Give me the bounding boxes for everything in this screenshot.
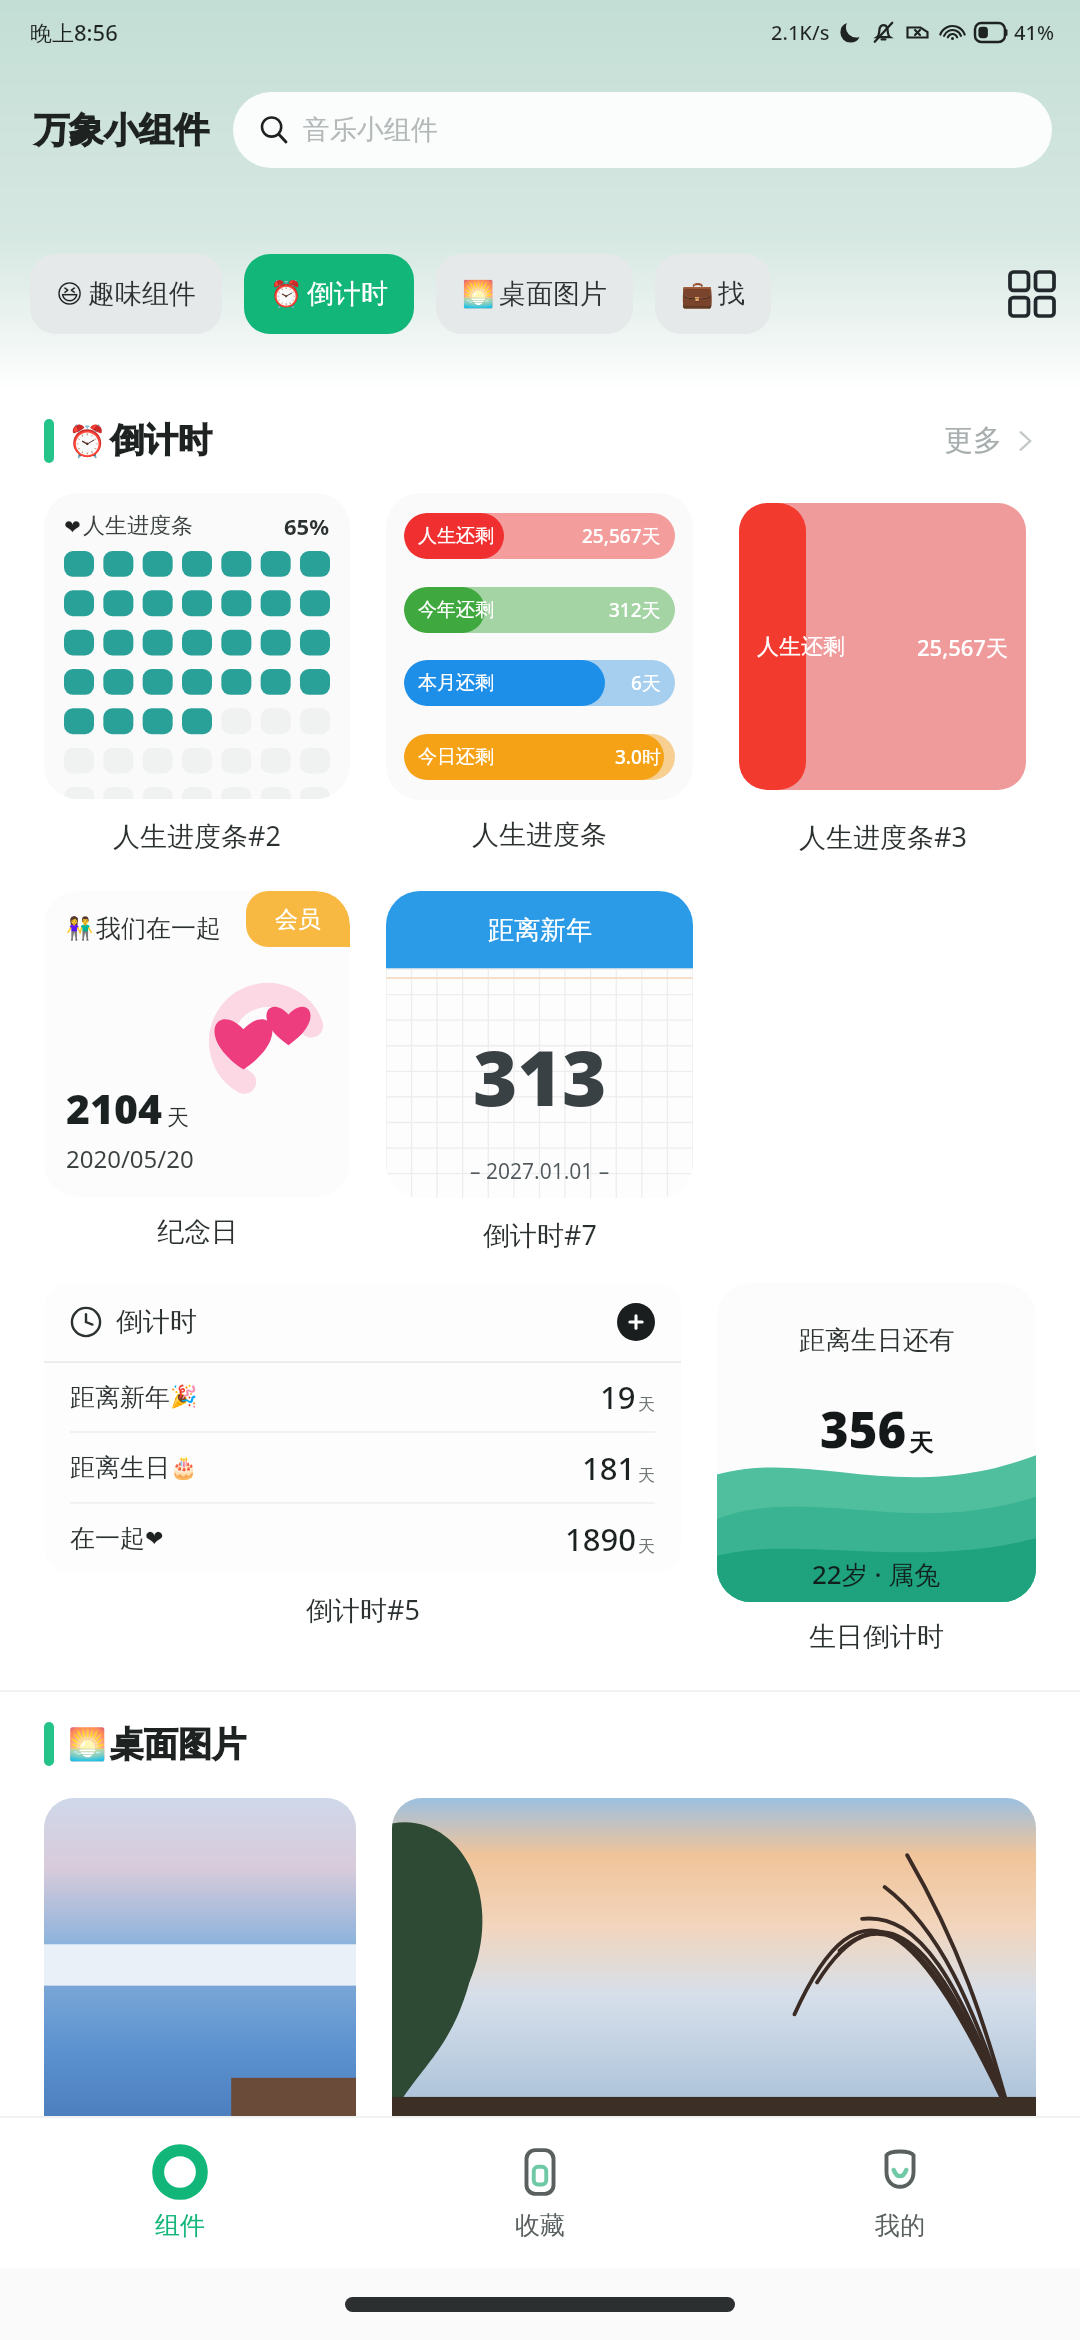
staticText: 本月还剩 — [418, 671, 494, 695]
staticText: 今日还剩 — [418, 745, 494, 769]
staticText: – 2027.01.01 – — [470, 1157, 610, 1186]
staticText: 距离新年 — [70, 1382, 170, 1413]
staticText: 我的 — [875, 2210, 925, 2241]
staticText: 万象小组件 — [34, 108, 209, 152]
button[interactable]: 距离生日还有 — [717, 1283, 1036, 1602]
button[interactable]: 我的 — [720, 2118, 1080, 2268]
staticText: 倒计时 — [307, 277, 388, 311]
staticText: 收藏 — [515, 2210, 565, 2241]
staticText: 🎂 — [170, 1455, 198, 1481]
staticText: ⏰ — [68, 423, 107, 459]
button[interactable] — [44, 1798, 356, 2116]
staticText: 倒计时 — [116, 1305, 197, 1339]
button[interactable]: 😆 — [30, 254, 222, 334]
staticText: 65% — [284, 511, 330, 541]
staticText: 👫 — [66, 916, 94, 942]
staticText: 2.1K/s — [771, 19, 830, 46]
staticText: 桌面图片 — [499, 277, 607, 311]
staticText: 桌面图片 — [110, 1723, 246, 1766]
button[interactable]: ⏰ — [244, 254, 414, 334]
button[interactable]: 距离新年 — [386, 891, 693, 1198]
staticText: 音乐小组件 — [303, 113, 438, 147]
staticText: 纪念日 — [157, 1215, 238, 1249]
staticText: 25,567天 — [917, 632, 1008, 662]
staticText: 距离新年 — [488, 914, 592, 947]
staticText: 倒计时 — [110, 419, 212, 462]
staticText: 会员 — [275, 905, 321, 934]
button[interactable]: 💼 — [655, 254, 771, 334]
staticText: 人生进度条#3 — [799, 818, 967, 855]
button[interactable]: 组件 — [0, 2118, 360, 2268]
button[interactable]: 更多 — [938, 416, 1044, 465]
staticText: 💼 — [681, 279, 714, 309]
staticText: 距离生日 — [70, 1452, 170, 1483]
staticText: 19 — [600, 1376, 636, 1418]
staticText: 我们在一起 — [96, 913, 221, 944]
staticText: 😆 — [56, 279, 84, 309]
staticText: 距离生日还有 — [799, 1324, 955, 1357]
staticText: 2020/05/20 — [66, 1142, 194, 1175]
staticText: 天 — [638, 1394, 655, 1415]
button[interactable]: Add countdown — [617, 1303, 655, 1341]
staticText: 找 — [718, 277, 745, 311]
staticText: 人生进度条 — [472, 818, 607, 852]
staticText: 组件 — [155, 2210, 205, 2241]
staticText: 人生进度条 — [83, 512, 193, 540]
staticText: 在一起 — [70, 1523, 145, 1554]
staticText: 1890 — [565, 1518, 636, 1560]
staticText: 3.0时 — [615, 744, 661, 770]
staticText: 313 — [473, 1025, 607, 1129]
staticText: ❤️ — [145, 1526, 164, 1552]
button[interactable]: 人生还剩 — [386, 493, 693, 800]
staticText: 天 — [638, 1536, 655, 1557]
staticText: 晚上8:56 — [30, 17, 118, 47]
staticText: 天 — [167, 1104, 189, 1132]
staticText: 🌅 — [68, 1726, 107, 1762]
staticText: 天 — [638, 1465, 655, 1486]
staticText: 🌅 — [462, 279, 495, 309]
staticText: 6天 — [631, 670, 661, 696]
button[interactable]: ❤️ — [44, 493, 350, 799]
staticText: 更多 — [944, 422, 1002, 459]
button[interactable] — [392, 1798, 1036, 2116]
staticText: 人生还剩 — [757, 633, 845, 661]
staticText: 356 — [820, 1396, 907, 1463]
button[interactable]: 🌅 — [436, 254, 633, 334]
staticText: 生日倒计时 — [809, 1620, 944, 1654]
staticText: 181 — [582, 1447, 636, 1489]
staticText: 25,567天 — [582, 523, 661, 549]
staticText: 🎉 — [170, 1384, 198, 1410]
staticText: 41% — [1014, 19, 1054, 46]
staticText: 倒计时#5 — [306, 1591, 420, 1628]
staticText: 倒计时#7 — [483, 1216, 597, 1253]
button[interactable]: 倒计时 — [44, 1283, 681, 1573]
staticText: 人生还剩 — [418, 524, 494, 548]
button[interactable]: Grid view — [984, 198, 1080, 390]
staticText: 312天 — [609, 597, 661, 623]
button[interactable]: 收藏 — [360, 2118, 720, 2268]
staticText: 天 — [909, 1428, 933, 1458]
staticText: 人生进度条#2 — [113, 817, 281, 854]
staticText: ⏰ — [270, 279, 303, 309]
button[interactable]: 音乐小组件 — [233, 92, 1052, 168]
staticText: 趣味组件 — [88, 277, 196, 311]
staticText: 2104 — [66, 1080, 163, 1136]
button[interactable]: 会员 — [44, 891, 350, 1197]
staticText: 今年还剩 — [418, 598, 494, 622]
button[interactable]: 人生还剩 — [729, 493, 1036, 800]
staticText: 22岁 · 属兔 — [812, 1556, 941, 1592]
staticText: ❤️ — [64, 515, 81, 538]
